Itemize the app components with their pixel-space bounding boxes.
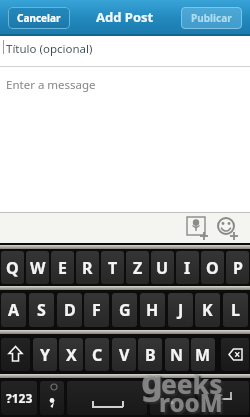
button[interactable]: X	[59, 338, 83, 371]
staticText: S	[37, 299, 46, 321]
button[interactable]: V	[112, 338, 136, 371]
staticText: ?123	[6, 390, 33, 406]
staticText: E	[58, 257, 67, 279]
button[interactable]: ?123	[1, 381, 37, 415]
staticText: Q	[6, 257, 19, 279]
staticText: rooM	[159, 386, 223, 417]
button[interactable]: F	[84, 293, 109, 327]
staticText: K	[202, 299, 213, 321]
button[interactable]: Cancelar	[8, 7, 70, 29]
staticText: U	[156, 257, 169, 279]
staticText: Y	[40, 344, 51, 366]
button[interactable]	[221, 338, 249, 371]
button[interactable]: S	[29, 293, 54, 327]
staticText: Add Post	[96, 8, 154, 26]
staticText: I	[184, 257, 191, 279]
staticText: Z	[133, 257, 143, 279]
button[interactable]: N	[165, 338, 189, 371]
staticText: O	[206, 257, 219, 279]
button[interactable]: P	[226, 251, 249, 284]
button[interactable]: W	[26, 251, 49, 284]
button[interactable]: C	[85, 338, 109, 371]
button[interactable]: Z	[126, 251, 149, 284]
button[interactable]: U	[151, 251, 174, 284]
staticText: T	[108, 257, 118, 279]
button[interactable]: B	[138, 338, 162, 371]
staticText: N	[170, 344, 184, 366]
staticText: J	[178, 299, 184, 321]
button[interactable]: .	[150, 381, 195, 415]
staticText: g	[141, 358, 163, 404]
staticText: C	[92, 344, 103, 366]
button[interactable]: K	[195, 293, 220, 327]
button[interactable]	[67, 381, 147, 415]
button[interactable]	[40, 381, 64, 415]
button[interactable]: G	[112, 293, 137, 327]
button[interactable]	[198, 381, 249, 415]
staticText: R	[82, 257, 93, 279]
button[interactable]: J	[168, 293, 193, 327]
staticText: B	[145, 344, 156, 366]
staticText: A	[8, 299, 20, 321]
staticText: .	[170, 388, 175, 408]
staticText: D	[64, 299, 76, 321]
button[interactable]: T	[101, 251, 124, 284]
button[interactable]: Publicar	[181, 7, 242, 29]
button[interactable]	[1, 338, 30, 371]
button[interactable]: O	[201, 251, 224, 284]
staticText: L	[231, 299, 240, 321]
staticText: Enter a message	[6, 77, 96, 93]
staticText: F	[92, 299, 101, 321]
button[interactable]: I	[176, 251, 199, 284]
staticText: M	[195, 344, 211, 366]
staticText: Cancelar	[17, 11, 61, 25]
staticText: W	[30, 257, 46, 279]
button[interactable]: L	[223, 293, 248, 327]
staticText: Título (opcional)	[6, 41, 93, 57]
staticText: G	[119, 299, 131, 321]
button[interactable]: R	[76, 251, 99, 284]
button[interactable]: E	[51, 251, 74, 284]
staticText: V	[119, 344, 130, 366]
button[interactable]: H	[140, 293, 165, 327]
staticText: P	[233, 257, 243, 279]
button[interactable]: A	[1, 293, 26, 327]
button[interactable]: M	[191, 338, 215, 371]
staticText: eeks	[161, 366, 223, 401]
staticText: X	[66, 344, 77, 366]
button[interactable]: Q	[1, 251, 24, 284]
staticText: Publicar	[191, 11, 232, 25]
staticText: H	[146, 299, 159, 321]
button[interactable]: D	[57, 293, 82, 327]
button[interactable]: Y	[33, 338, 57, 371]
